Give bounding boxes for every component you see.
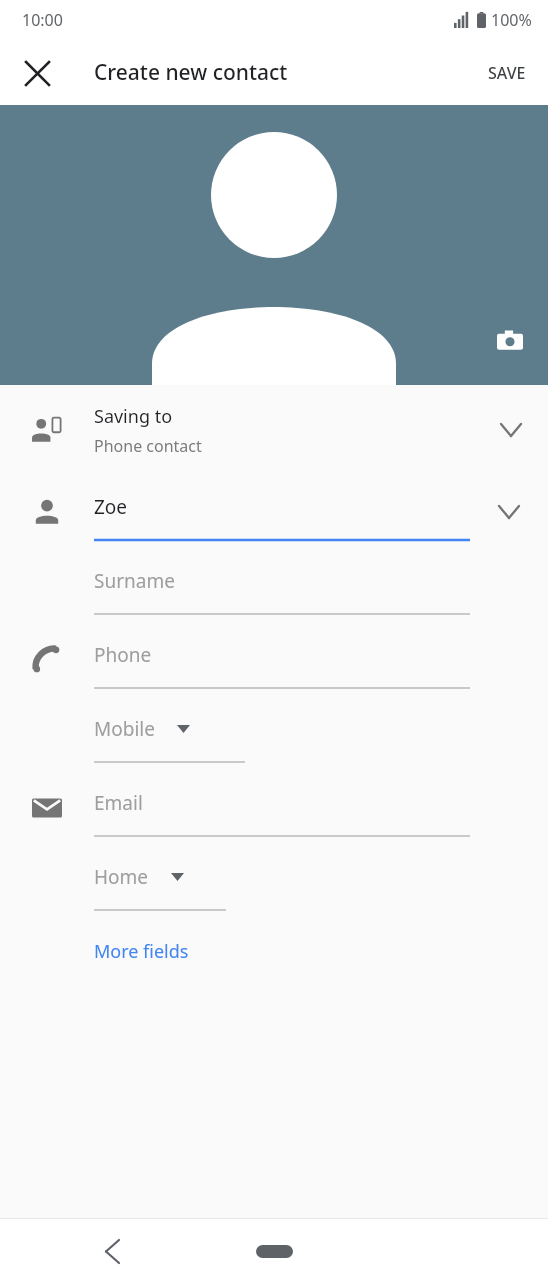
button[interactable]: Back <box>88 1227 136 1275</box>
staticText: Mobile <box>94 716 155 742</box>
staticText: 100% <box>491 9 532 31</box>
button[interactable]: Zoe <box>0 475 548 549</box>
staticText: Phone contact <box>94 435 202 457</box>
staticText: 10:00 <box>22 9 63 31</box>
button[interactable]: Surname <box>0 549 548 623</box>
staticText: Email <box>94 790 143 816</box>
button[interactable]: Phone <box>0 623 548 697</box>
staticText: Phone <box>94 642 152 668</box>
button[interactable]: SAVE <box>476 50 538 96</box>
button[interactable]: Saving to <box>0 385 548 475</box>
staticText: Saving to <box>94 404 173 429</box>
staticText: Surname <box>94 568 175 594</box>
staticText: More fields <box>94 939 189 964</box>
staticText: SAVE <box>488 62 526 84</box>
button[interactable]: Home <box>248 1240 300 1262</box>
staticText: Home <box>94 864 149 890</box>
button[interactable]: Email <box>0 771 548 845</box>
button[interactable]: Mobile <box>0 697 548 771</box>
button[interactable]: More fields <box>94 939 189 964</box>
staticText: Zoe <box>94 494 128 520</box>
button[interactable]: Close <box>13 49 61 97</box>
staticText: Create new contact <box>94 58 288 87</box>
button[interactable]: Home <box>0 845 548 919</box>
button[interactable]: Take photo <box>488 319 532 363</box>
button[interactable]: Add contact photo <box>0 105 548 385</box>
